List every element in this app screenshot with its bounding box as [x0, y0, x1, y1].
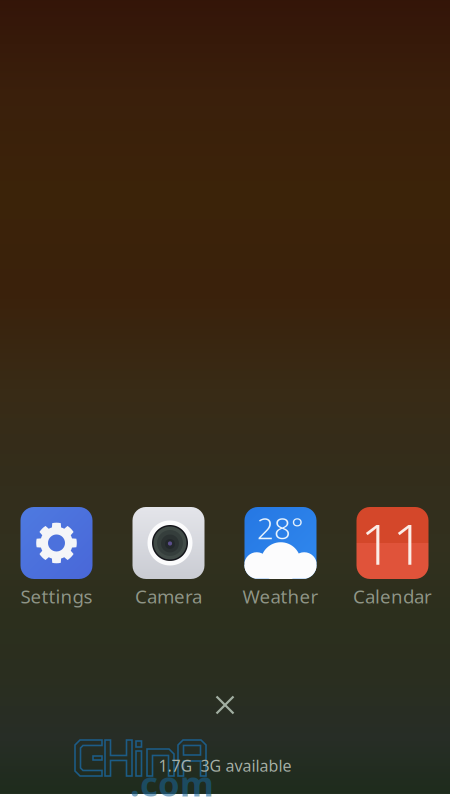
button[interactable]: 11 [356, 507, 428, 609]
staticText: Weather [242, 584, 318, 609]
staticText: Settings [20, 584, 92, 609]
button[interactable]: Close [202, 682, 248, 728]
staticText: 1.7G 3G available [158, 755, 291, 776]
staticText: .com [130, 760, 214, 800]
staticText: 28° [257, 508, 304, 547]
button[interactable]: Settings [20, 507, 92, 609]
button[interactable]: 28° [244, 507, 316, 609]
staticText: Camera [135, 584, 202, 609]
staticText: 11 [360, 506, 424, 580]
button[interactable]: Camera [132, 507, 204, 609]
staticText: Calendar [353, 584, 432, 609]
